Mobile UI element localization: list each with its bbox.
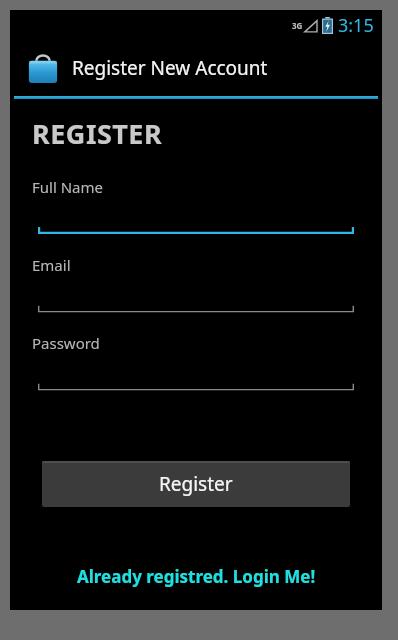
staticText: Password: [32, 333, 100, 353]
button[interactable]: Email: [32, 255, 360, 313]
staticText: 3G: [292, 20, 303, 31]
button[interactable]: Full Name: [32, 177, 360, 235]
button[interactable]: Register: [42, 461, 350, 507]
staticText: Already registred. Login Me!: [77, 565, 316, 588]
staticText: Full Name: [32, 177, 103, 197]
staticText: REGISTER: [32, 115, 163, 152]
staticText: Register New Account: [72, 55, 268, 81]
staticText: 3:15: [338, 13, 374, 38]
button[interactable]: Already registred. Login Me!: [32, 559, 360, 594]
staticText: Register: [159, 471, 233, 497]
button[interactable]: Password: [32, 333, 360, 391]
staticText: Email: [32, 255, 71, 275]
